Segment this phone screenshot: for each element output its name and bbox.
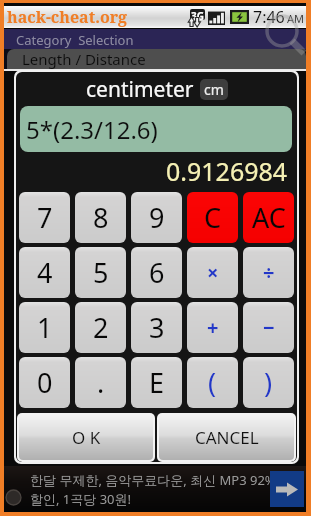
staticText: AM: [287, 11, 305, 26]
staticText: AC: [252, 199, 286, 236]
staticText: 3: [149, 309, 165, 346]
button[interactable]: 5: [75, 247, 126, 298]
button[interactable]: 1: [19, 302, 70, 353]
staticText: 5: [93, 254, 109, 291]
staticText: 6: [149, 254, 165, 291]
button[interactable]: O K: [19, 415, 153, 460]
staticText: centimeter: [86, 75, 194, 104]
staticText: hack-cheat.org: [7, 6, 128, 28]
staticText: ÷: [263, 259, 275, 286]
staticText: 할인, 1곡당 30원!: [30, 490, 132, 508]
staticText: Category Selection: [16, 31, 134, 49]
staticText: C: [204, 199, 222, 236]
staticText: ): [264, 364, 273, 401]
staticText: +: [207, 314, 219, 341]
staticText: Length / Distance: [22, 49, 146, 69]
staticText: 9: [149, 199, 165, 236]
button[interactable]: ): [243, 357, 294, 408]
button[interactable]: ÷: [243, 247, 294, 298]
button[interactable]: 4: [19, 247, 70, 298]
staticText: 7: [37, 199, 53, 236]
staticText: ×: [207, 259, 219, 286]
staticText: 한달 무제한, 음악무료다운, 최신 MP3 92%: [30, 471, 276, 489]
staticText: 5*(2.3/12.6): [26, 113, 158, 146]
button[interactable]: 0: [19, 357, 70, 408]
staticText: CANCEL: [195, 426, 259, 449]
staticText: .: [97, 364, 105, 401]
staticText: E: [149, 364, 165, 401]
button[interactable]: 6: [131, 247, 182, 298]
button[interactable]: +: [187, 302, 238, 353]
button[interactable]: AC: [243, 192, 294, 243]
button[interactable]: Open advertisement: [270, 471, 304, 507]
staticText: 3G: [191, 9, 204, 20]
button[interactable]: ×: [187, 247, 238, 298]
staticText: cm: [204, 80, 224, 99]
button[interactable]: 3: [131, 302, 182, 353]
staticText: O K: [72, 426, 101, 449]
staticText: 1: [37, 309, 53, 346]
button[interactable]: .: [75, 357, 126, 408]
staticText: 7:46: [253, 6, 285, 28]
button[interactable]: (: [187, 357, 238, 408]
button[interactable]: E: [131, 357, 182, 408]
staticText: −: [263, 314, 275, 341]
button[interactable]: 7: [19, 192, 70, 243]
button[interactable]: CANCEL: [159, 415, 294, 460]
staticText: 4: [37, 254, 53, 291]
button[interactable]: −: [243, 302, 294, 353]
staticText: 0.9126984: [166, 154, 288, 184]
button[interactable]: C: [187, 192, 238, 243]
button[interactable]: 8: [75, 192, 126, 243]
staticText: (: [208, 364, 217, 401]
button[interactable]: 2: [75, 302, 126, 353]
staticText: 8: [93, 199, 109, 236]
button[interactable]: 9: [131, 192, 182, 243]
staticText: 2: [93, 309, 109, 346]
staticText: 0: [37, 364, 53, 401]
